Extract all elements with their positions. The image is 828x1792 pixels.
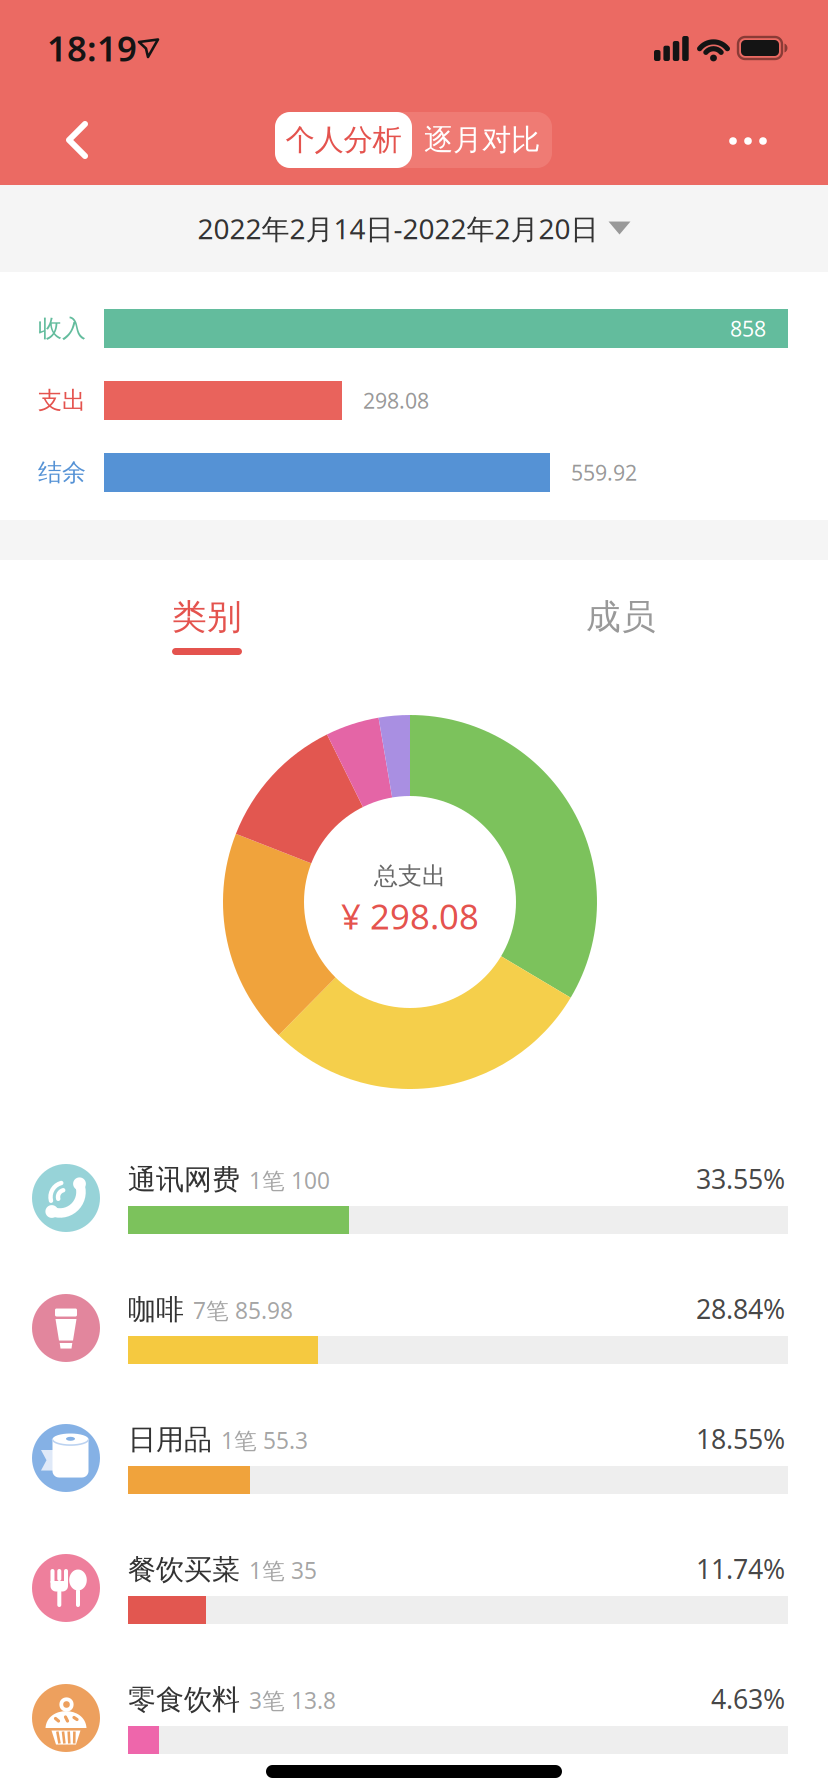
staticText: 3笔 13.8: [249, 1685, 336, 1715]
button[interactable]: 零食饮料: [0, 1650, 828, 1780]
staticText: 类别: [172, 596, 242, 638]
staticText: 559.92: [571, 458, 637, 487]
button[interactable]: 餐饮买菜: [0, 1520, 828, 1650]
staticText: 支出: [38, 386, 86, 415]
button[interactable]: [41, 116, 113, 164]
staticText: 858: [730, 314, 766, 343]
staticText: 咖啡: [128, 1293, 184, 1327]
button[interactable]: [723, 121, 773, 161]
button[interactable]: 2022年2月14日-2022年2月20日: [0, 185, 828, 272]
staticText: 个人分析: [285, 122, 401, 158]
button[interactable]: 通讯网费: [0, 1130, 828, 1260]
button[interactable]: 成员: [414, 560, 828, 675]
staticText: 1笔 35: [249, 1555, 317, 1585]
staticText: 2022年2月14日-2022年2月20日: [197, 210, 598, 247]
staticText: 11.74%: [696, 1551, 785, 1586]
button[interactable]: 类别: [0, 560, 414, 675]
staticText: 成员: [586, 596, 656, 638]
staticText: 18.55%: [696, 1421, 785, 1456]
staticText: 收入: [38, 314, 86, 343]
button[interactable]: 个人分析: [275, 112, 412, 168]
staticText: 298.08: [363, 386, 429, 415]
staticText: 33.55%: [696, 1161, 785, 1196]
staticText: 通讯网费: [128, 1163, 240, 1197]
staticText: 零食饮料: [128, 1683, 240, 1717]
staticText: 结余: [38, 458, 86, 487]
staticText: 28.84%: [696, 1291, 785, 1326]
button[interactable]: 日用品: [0, 1390, 828, 1520]
staticText: 总支出: [374, 861, 446, 891]
staticText: 18:19: [47, 25, 137, 71]
staticText: 1笔 100: [249, 1165, 330, 1195]
button[interactable]: 逐月对比: [412, 112, 552, 168]
button[interactable]: 咖啡: [0, 1260, 828, 1390]
staticText: 餐饮买菜: [128, 1553, 240, 1587]
staticText: 4.63%: [711, 1681, 785, 1716]
staticText: 日用品: [128, 1423, 212, 1457]
staticText: 7笔 85.98: [193, 1295, 293, 1325]
staticText: 1笔 55.3: [221, 1425, 308, 1455]
staticText: ¥ 298.08: [341, 893, 479, 939]
staticText: 逐月对比: [424, 122, 540, 158]
